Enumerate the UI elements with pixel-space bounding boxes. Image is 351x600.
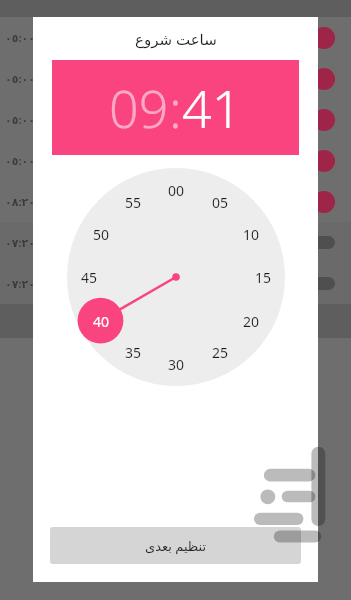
staticText: 00 <box>168 181 185 200</box>
staticText: 40 <box>93 312 110 331</box>
staticText: 50 <box>93 225 110 244</box>
button[interactable]: 15 <box>255 268 272 287</box>
staticText: : <box>169 72 182 143</box>
button[interactable]: ٠٨:٢٠ <box>0 181 351 222</box>
staticText: ٠٨:٢٠ <box>5 194 35 209</box>
button[interactable]: 05 <box>212 193 229 212</box>
button[interactable]: 10 <box>243 225 260 244</box>
staticText: ٠٥:٠٠ <box>5 112 35 127</box>
button[interactable]: ٠٥:٠٠ <box>0 58 351 99</box>
staticText: ٠٥:٠٠ <box>5 30 35 45</box>
staticText: 30 <box>168 355 185 374</box>
button[interactable]: 55 <box>125 193 142 212</box>
staticText: 25 <box>212 343 229 362</box>
button[interactable]: 00 <box>168 181 185 200</box>
button[interactable]: تنظیم بعدی <box>50 527 301 564</box>
button[interactable]: ٠٥:٠٠ <box>0 99 351 140</box>
staticText: 35 <box>125 343 142 362</box>
button[interactable]: 50 <box>93 225 110 244</box>
staticText: 15 <box>255 268 272 287</box>
staticText: 05 <box>212 193 229 212</box>
button[interactable]: 25 <box>212 343 229 362</box>
button[interactable]: 30 <box>168 355 185 374</box>
button[interactable]: 09 <box>109 72 169 143</box>
button[interactable]: 40 <box>93 312 110 331</box>
staticText: 45 <box>81 268 98 287</box>
button[interactable]: ٠٥:٠٠ <box>0 17 351 58</box>
button[interactable]: ٠٧:٢٠ <box>0 222 351 263</box>
staticText: ٠٧:٢٠ <box>5 235 35 250</box>
button[interactable] <box>67 168 285 386</box>
staticText: ٠٥:٠٠ <box>5 153 35 168</box>
button[interactable]: ٠٧:٢٠ <box>0 263 351 304</box>
staticText: ٠٧:٢٠ <box>5 276 35 291</box>
staticText: 20 <box>243 312 260 331</box>
staticText: 55 <box>125 193 142 212</box>
button[interactable]: 20 <box>243 312 260 331</box>
button[interactable]: 45 <box>81 268 98 287</box>
staticText: 09 <box>109 72 169 143</box>
staticText: تنظیم بعدی <box>145 537 207 555</box>
staticText: 10 <box>243 225 260 244</box>
button[interactable]: 35 <box>125 343 142 362</box>
staticText: ساعت شروع <box>135 29 217 49</box>
button[interactable]: 41 <box>182 72 242 143</box>
staticText: ٠٥:٠٠ <box>5 71 35 86</box>
staticText: 41 <box>182 72 242 143</box>
button[interactable]: ٠٥:٠٠ <box>0 140 351 181</box>
